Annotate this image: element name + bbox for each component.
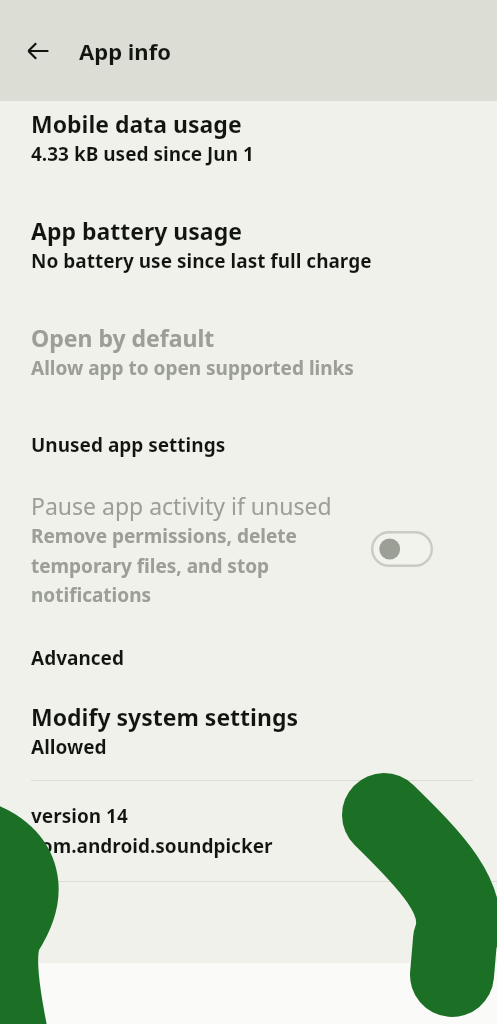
button[interactable]: Back	[14, 27, 62, 75]
button[interactable]: Advanced	[0, 617, 497, 681]
button[interactable]: Unused app settings	[0, 403, 497, 468]
staticText: 4.33 kB used since Jun 1	[31, 141, 254, 167]
staticText: Pause app activity if unused	[31, 490, 332, 521]
staticText: Advanced	[31, 645, 124, 671]
staticText: Open by default	[31, 322, 215, 353]
staticText: com.android.soundpicker	[31, 833, 273, 859]
button[interactable]: Pause app activity if unused	[0, 468, 497, 617]
staticText: Allowed	[31, 734, 107, 760]
button[interactable]: Mobile data usage	[0, 101, 497, 189]
staticText: version 14	[31, 803, 128, 829]
staticText: Remove permissions, delete temporary fil…	[31, 523, 361, 607]
button[interactable]: Pause app activity if unused toggle	[371, 531, 433, 567]
staticText: App battery usage	[31, 215, 242, 246]
staticText: App info	[79, 36, 171, 66]
staticText: Modify system settings	[31, 701, 298, 732]
staticText: Mobile data usage	[31, 108, 242, 139]
staticText: Unused app settings	[31, 432, 226, 458]
button[interactable]: version 14	[0, 781, 497, 881]
staticText: Allow app to open supported links	[31, 355, 354, 381]
staticText: No battery use since last full charge	[31, 248, 372, 274]
button[interactable]: Open by default	[0, 296, 497, 403]
button[interactable]: App battery usage	[0, 189, 497, 296]
button[interactable]: Modify system settings	[0, 681, 497, 780]
